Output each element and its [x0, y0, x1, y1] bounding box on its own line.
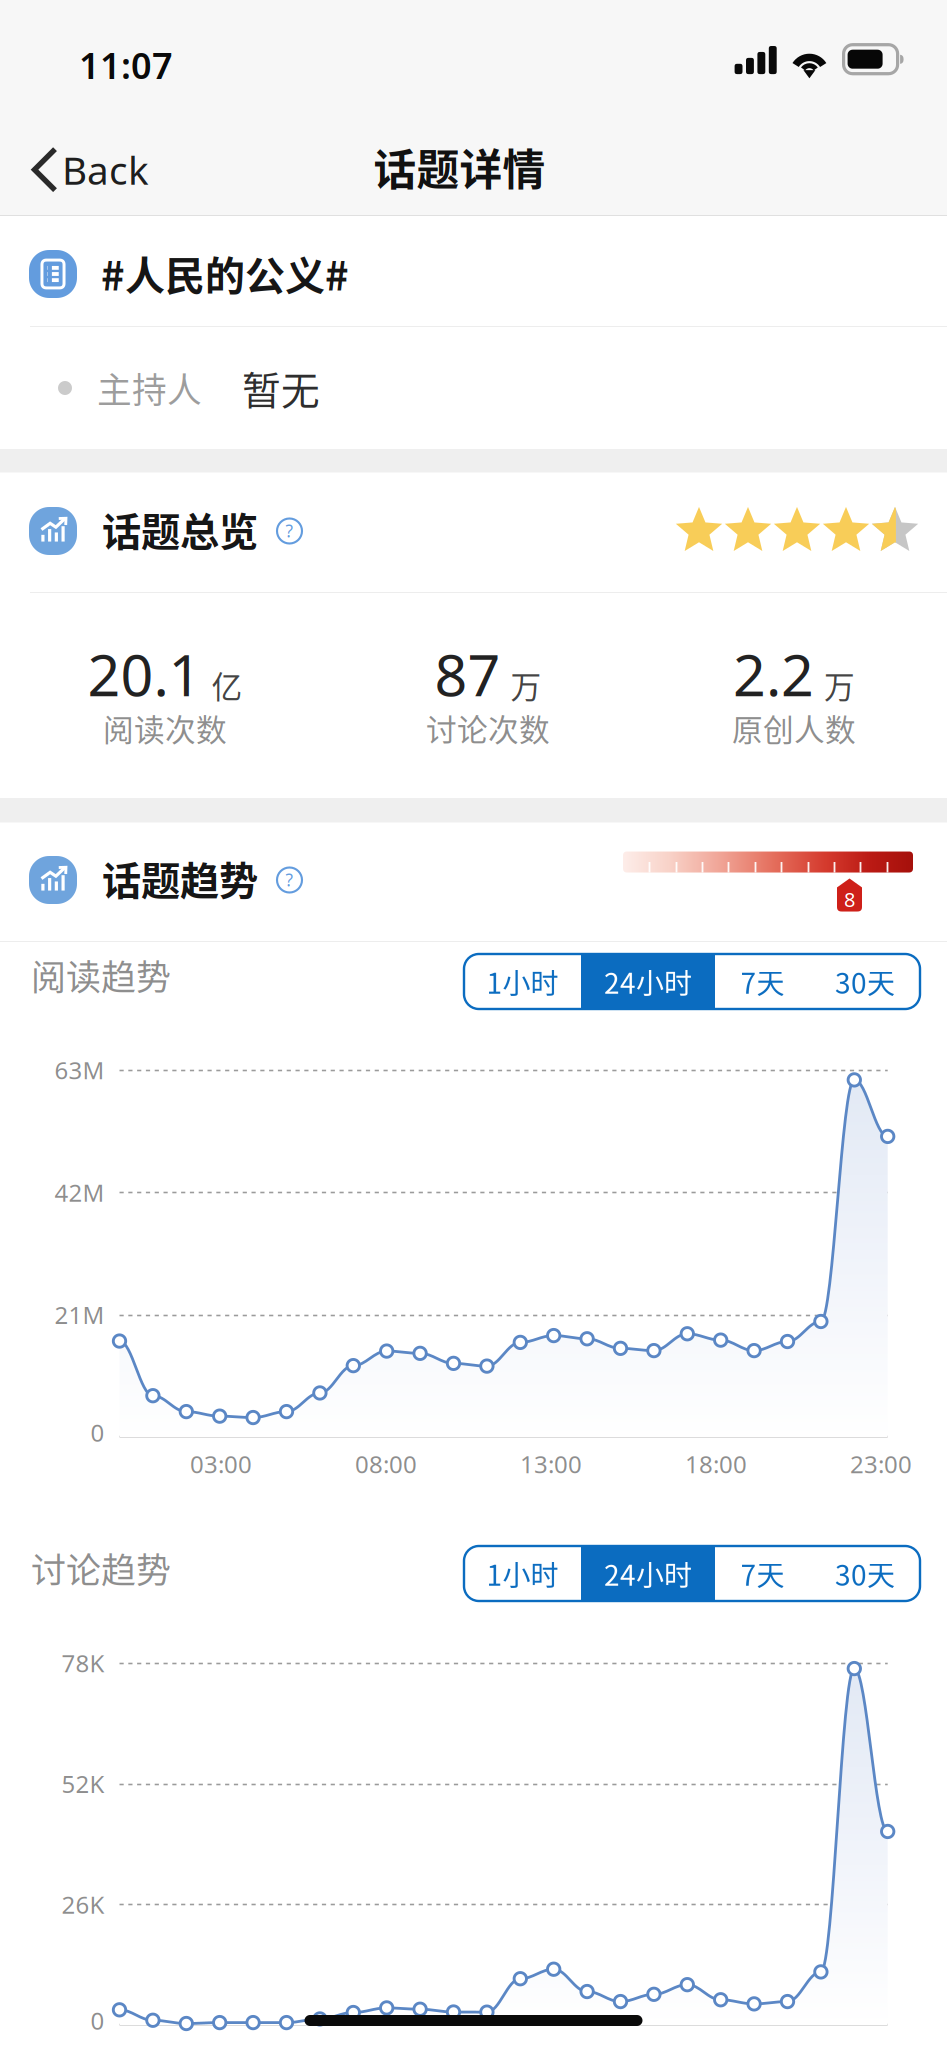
- staticText: 2.2: [733, 636, 814, 712]
- staticText: 话题趋势: [102, 850, 258, 906]
- staticText: ?: [285, 519, 293, 542]
- staticText: 0: [90, 2005, 104, 2036]
- staticText: 63M: [54, 1054, 104, 1086]
- staticText: 13:00: [520, 1448, 582, 1480]
- staticText: 1小时: [486, 1553, 558, 1594]
- staticText: ?: [285, 868, 293, 891]
- staticText: 7天: [740, 1553, 784, 1594]
- staticText: #人民的公义#: [101, 244, 349, 302]
- staticText: 0: [90, 1417, 104, 1448]
- button[interactable]: 7天: [715, 1546, 810, 1601]
- staticText: 52K: [61, 1768, 104, 1800]
- button[interactable]: 1小时: [464, 954, 581, 1009]
- staticText: 7天: [740, 961, 784, 1002]
- staticText: 话题详情: [373, 136, 545, 198]
- staticText: 11:07: [79, 41, 173, 89]
- staticText: 1小时: [486, 961, 558, 1002]
- button[interactable]: 24小时: [581, 954, 715, 1009]
- staticText: Back: [62, 144, 149, 195]
- staticText: 21M: [54, 1299, 104, 1331]
- staticText: 30天: [835, 961, 895, 1002]
- staticText: 26K: [61, 1888, 104, 1920]
- button[interactable]: About topic overview: [267, 509, 311, 553]
- button[interactable]: 30天: [810, 1546, 920, 1601]
- button[interactable]: About topic trend: [267, 858, 311, 902]
- button[interactable]: 24小时: [581, 1546, 715, 1601]
- staticText: 原创人数: [732, 706, 856, 750]
- button[interactable]: 7天: [715, 954, 810, 1009]
- staticText: 暂无: [242, 360, 320, 416]
- staticText: 20.1: [87, 636, 201, 712]
- staticText: 万: [510, 663, 541, 707]
- button[interactable]: 1小时: [464, 1546, 581, 1601]
- staticText: 78K: [61, 1647, 104, 1679]
- staticText: 讨论趋势: [31, 1543, 171, 1593]
- staticText: 08:00: [355, 1448, 417, 1480]
- staticText: 万: [824, 663, 855, 707]
- staticText: 话题总览: [102, 501, 258, 557]
- staticText: 42M: [54, 1176, 104, 1208]
- staticText: 03:00: [190, 1448, 252, 1480]
- staticText: 87: [434, 636, 500, 712]
- staticText: 30天: [835, 1553, 895, 1594]
- staticText: 24小时: [604, 961, 692, 1002]
- staticText: 23:00: [850, 1448, 912, 1480]
- staticText: 主持人: [97, 363, 202, 413]
- staticText: 亿: [211, 663, 242, 707]
- staticText: 24小时: [604, 1553, 692, 1594]
- button[interactable]: Back: [3, 122, 177, 217]
- staticText: 阅读次数: [103, 706, 227, 750]
- staticText: 阅读趋势: [31, 950, 171, 1000]
- button[interactable]: 30天: [810, 954, 920, 1009]
- staticText: 讨论次数: [426, 706, 550, 750]
- staticText: 18:00: [685, 1448, 747, 1480]
- staticText: 8: [844, 886, 855, 913]
